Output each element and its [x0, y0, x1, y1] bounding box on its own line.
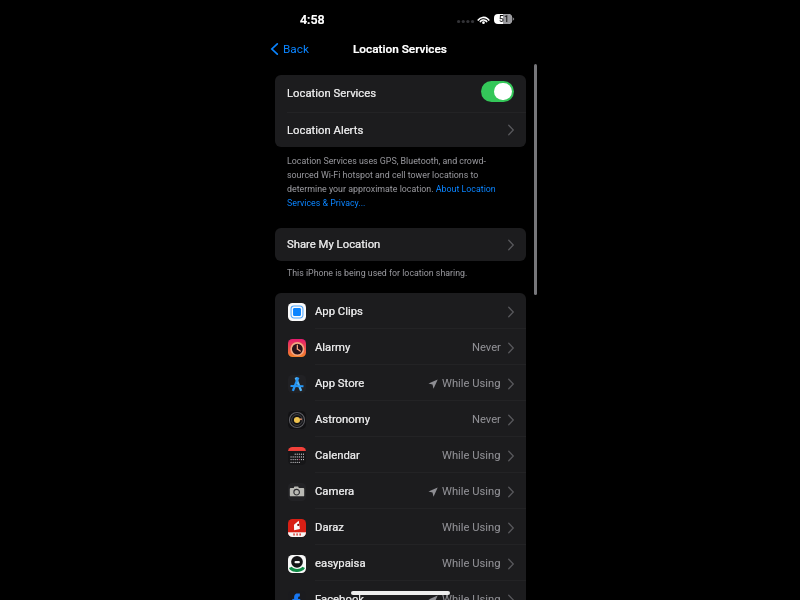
staticText: Location Services uses GPS, Bluetooth, a…: [287, 156, 498, 208]
staticText: Location Services: [353, 42, 447, 56]
button[interactable]: Alarmy: [275, 329, 526, 364]
staticText: 51: [499, 14, 509, 24]
staticText: While Using: [442, 485, 501, 498]
staticText: App Store: [315, 377, 365, 390]
staticText: App Clips: [315, 305, 363, 318]
staticText: Never: [472, 413, 501, 426]
staticText: This iPhone is being used for location s…: [287, 268, 468, 278]
button[interactable]: Astronomy: [275, 401, 526, 436]
staticText: Alarmy: [315, 341, 351, 354]
button[interactable]: Location Services toggle: [481, 81, 514, 102]
button[interactable]: App Clips: [275, 293, 526, 328]
button[interactable]: Daraz: [275, 509, 526, 544]
staticText: Camera: [315, 485, 355, 498]
staticText: 4:58: [300, 12, 325, 27]
button[interactable]: Calendar: [275, 437, 526, 472]
button[interactable]: Back: [268, 39, 312, 59]
button[interactable]: Location Services: [275, 75, 526, 112]
button[interactable]: Location Alerts: [275, 113, 526, 147]
staticText: easypaisa: [315, 557, 366, 570]
staticText: Facebook: [315, 593, 365, 600]
staticText: Location Alerts: [287, 124, 364, 137]
staticText: Never: [472, 341, 501, 354]
staticText: Calendar: [315, 449, 360, 462]
staticText: While Using: [442, 557, 501, 570]
button[interactable]: Camera: [275, 473, 526, 508]
button[interactable]: Facebook: [275, 581, 526, 600]
staticText: While Using: [442, 593, 501, 600]
staticText: While Using: [442, 449, 501, 462]
staticText: Location Services: [287, 87, 377, 100]
staticText: Astronomy: [315, 413, 370, 426]
button[interactable]: easypaisa: [275, 545, 526, 580]
button[interactable]: App Store: [275, 365, 526, 400]
staticText: While Using: [442, 377, 501, 390]
staticText: Back: [283, 42, 309, 56]
button[interactable]: Share My Location: [275, 228, 526, 261]
staticText: While Using: [442, 521, 501, 534]
staticText: Share My Location: [287, 238, 381, 251]
staticText: Daraz: [315, 521, 344, 534]
